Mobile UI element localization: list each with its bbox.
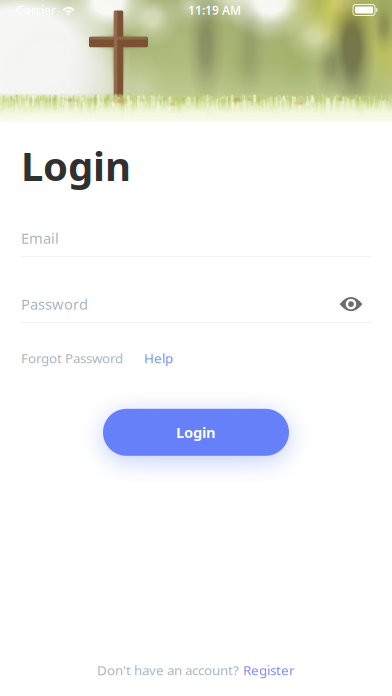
staticText: Password	[21, 294, 88, 314]
staticText: Login	[176, 423, 216, 442]
staticText: Help	[144, 349, 173, 367]
staticText: Carrier	[16, 2, 56, 18]
staticText: Login	[21, 139, 131, 192]
button[interactable]: Show password	[339, 296, 364, 313]
button[interactable]: Register	[243, 661, 295, 679]
staticText: Register	[243, 661, 295, 679]
staticText: Email	[21, 228, 59, 248]
staticText: Don't have an account?	[97, 661, 239, 679]
button[interactable]: Login	[103, 409, 289, 456]
staticText: Forgot Password	[21, 349, 123, 367]
staticText: 11:19 AM	[188, 2, 241, 18]
button[interactable]: Forgot Password	[21, 349, 123, 367]
button[interactable]: Help	[144, 349, 173, 367]
